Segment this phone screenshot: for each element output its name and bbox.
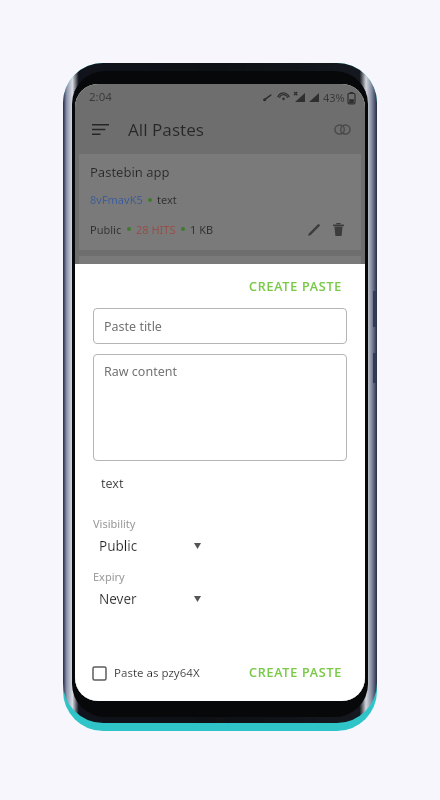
staticText: Public [90, 222, 122, 237]
staticText: text [157, 192, 177, 207]
staticText: 28 HITS [136, 222, 176, 237]
staticText: Visibility [93, 516, 136, 531]
button[interactable]: Menu [83, 112, 117, 146]
staticText: Public [99, 537, 138, 555]
button[interactable]: Never [93, 590, 203, 608]
button[interactable]: CREATE PASTE [245, 272, 347, 301]
staticText: 1 KB [190, 222, 214, 237]
button[interactable]: Delete [326, 217, 350, 241]
button[interactable]: Link [327, 114, 357, 144]
staticText: Never [99, 590, 137, 608]
staticText: 8vFmavK5 [90, 192, 143, 207]
button[interactable]: untitled [79, 256, 361, 318]
staticText: 0qXQze5n [90, 294, 143, 309]
staticText: CREATE PASTE [249, 664, 343, 681]
button[interactable]: Edit [302, 217, 326, 241]
button[interactable]: Paste title [93, 308, 347, 344]
staticText: All Pastes [128, 118, 204, 141]
staticText: Pastebin app [90, 163, 170, 181]
staticText: 43% [323, 90, 345, 105]
staticText: text [101, 475, 124, 492]
staticText: Expiry [93, 569, 125, 584]
button[interactable]: CREATE PASTE [245, 658, 347, 687]
staticText: 2:04 [89, 89, 112, 105]
staticText: Raw content [104, 363, 177, 380]
staticText: Paste as pzy64X [114, 665, 200, 681]
staticText: CREATE PASTE [249, 278, 343, 295]
button[interactable]: Public [93, 537, 203, 555]
button[interactable]: Pastebin app [79, 154, 361, 250]
button[interactable]: Raw content [93, 354, 347, 461]
button[interactable]: Paste as pzy64X [93, 661, 200, 685]
staticText: Paste title [104, 318, 162, 335]
staticText: text [157, 294, 177, 309]
